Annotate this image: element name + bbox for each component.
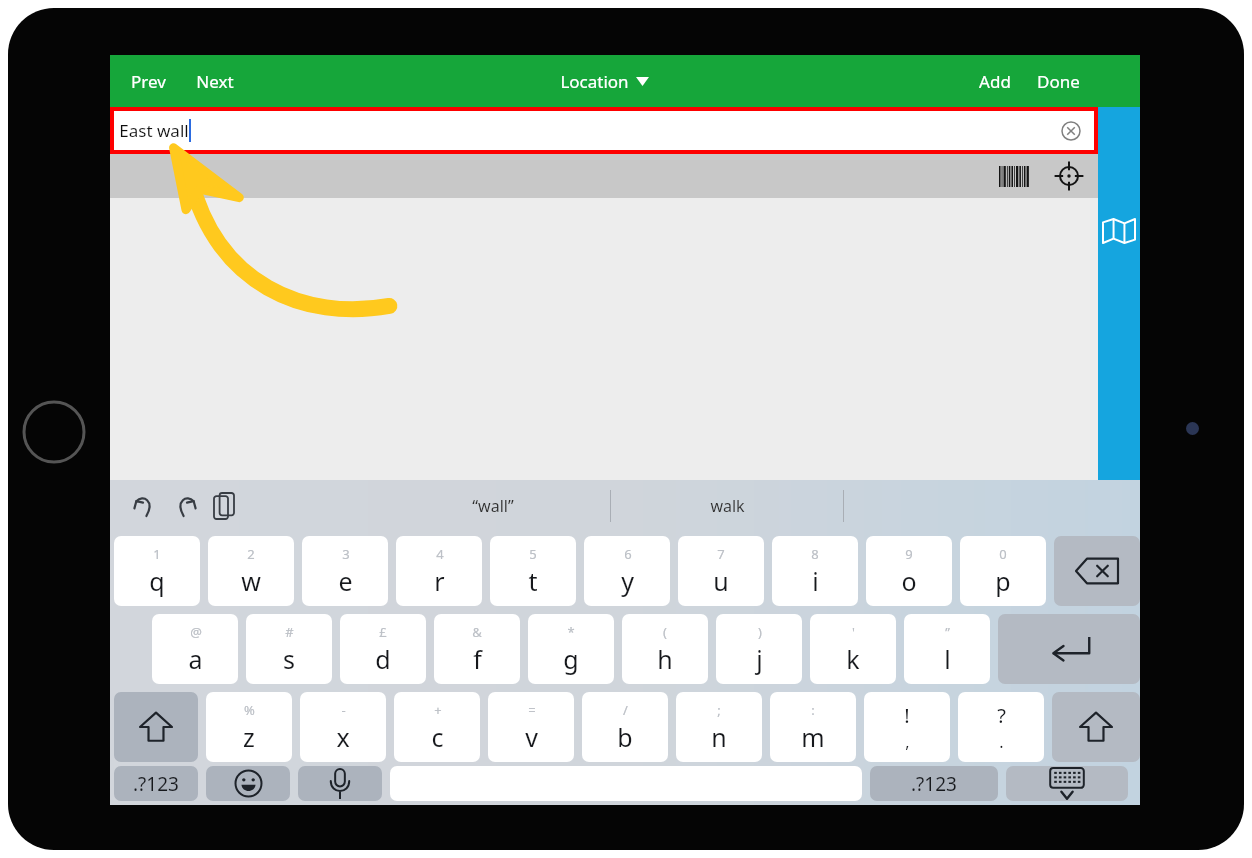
staticText: o [901,564,917,598]
staticText: m [801,720,825,754]
staticText: . [999,731,1004,753]
staticText: p [995,564,1011,598]
button[interactable]: Scan barcode [999,166,1030,187]
staticText: ! [904,702,910,729]
button[interactable]: Locate me [1054,161,1084,191]
button[interactable]: walk [611,480,843,532]
staticText: Add [979,70,1011,93]
button[interactable]: Hide keyboard [1006,766,1128,801]
button[interactable]: / [582,692,668,762]
button[interactable]: .?123 [870,766,998,801]
staticText: * [567,623,575,641]
button[interactable]: Add [971,63,1019,100]
staticText: ” [945,623,950,641]
button[interactable]: & [434,614,520,684]
staticText: Next [196,70,234,93]
staticText: Done [1037,70,1080,93]
staticText: £ [379,623,387,641]
button[interactable]: @ [152,614,238,684]
staticText: a [188,642,203,676]
staticText: ) [758,623,762,641]
staticText: ; [717,701,721,719]
button[interactable]: 3 [302,536,388,606]
staticText: n [711,720,727,754]
staticText: x [336,720,350,754]
staticText: u [713,564,729,598]
button[interactable]: Location [550,63,659,100]
staticText: q [149,564,165,598]
button[interactable]: Prev [122,63,175,100]
staticText: - [341,701,346,719]
button[interactable]: ; [676,692,762,762]
button[interactable]: 4 [396,536,482,606]
staticText: y [621,564,634,598]
staticText: walk [710,495,745,517]
staticText: ' [852,623,855,641]
button[interactable]: - [300,692,386,762]
button[interactable]: Undo [132,494,156,518]
button[interactable]: £ [340,614,426,684]
button[interactable]: : [770,692,856,762]
staticText: l [944,642,951,676]
button[interactable]: = [488,692,574,762]
button[interactable]: 0 [960,536,1046,606]
staticText: 5 [529,545,537,563]
button[interactable]: Dictate [298,766,382,801]
button[interactable]: 9 [866,536,952,606]
button[interactable]: % [206,692,292,762]
staticText: c [431,720,444,754]
button[interactable]: Shift [114,692,198,762]
staticText: e [338,564,353,598]
button[interactable]: 5 [490,536,576,606]
button[interactable]: 7 [678,536,764,606]
button[interactable]: .?123 [114,766,198,801]
staticText: 3 [342,545,350,563]
staticText: Prev [131,70,166,93]
staticText: 0 [999,545,1007,563]
button[interactable]: Backspace [1054,536,1140,606]
button[interactable]: Done [1029,63,1088,100]
staticText: + [434,701,442,719]
button[interactable]: 6 [584,536,670,606]
button[interactable]: 1 [114,536,200,606]
staticText: 1 [153,545,161,563]
staticText: 7 [717,545,725,563]
button[interactable]: Shift [1052,692,1140,762]
button[interactable]: 2 [208,536,294,606]
button[interactable]: Paste [214,493,234,519]
button[interactable]: * [528,614,614,684]
button[interactable]: ” [904,614,990,684]
staticText: East wall [119,119,189,142]
staticText: “wall” [472,495,514,517]
button[interactable]: # [246,614,332,684]
button[interactable]: + [394,692,480,762]
staticText: j [756,642,763,676]
button[interactable]: 8 [772,536,858,606]
staticText: i [812,564,819,598]
button[interactable]: Emoji [206,766,290,801]
staticText: .?123 [911,771,957,797]
button[interactable]: ) [716,614,802,684]
button[interactable]: Clear text [1061,121,1081,141]
button[interactable]: “wall” [376,480,610,532]
button[interactable]: ! [864,692,950,762]
button[interactable]: Next [187,63,243,100]
button[interactable]: ? [958,692,1044,762]
button[interactable]: East wall [114,111,1094,150]
button[interactable]: ' [810,614,896,684]
staticText: 9 [905,545,913,563]
staticText: 4 [436,545,444,563]
button[interactable]: Return [998,614,1140,684]
button[interactable]: ( [622,614,708,684]
staticText: 6 [624,545,632,563]
staticText: t [528,564,538,598]
staticText: f [473,642,482,676]
button[interactable]: Redo [174,494,198,518]
staticText: % [244,701,255,719]
staticText: s [283,642,295,676]
button[interactable]: Map [1098,107,1140,480]
staticText: 2 [247,545,255,563]
staticText: & [472,623,482,641]
staticText: r [434,564,445,598]
